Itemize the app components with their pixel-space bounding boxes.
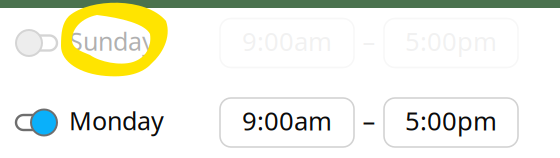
staticText: Sunday: [69, 24, 155, 58]
staticText: 5:00pm: [405, 103, 497, 138]
button[interactable]: 5:00pm: [384, 98, 518, 147]
button[interactable]: Monday: [0, 105, 164, 139]
button[interactable]: Sunday: [0, 26, 155, 60]
button[interactable]: 9:00am: [220, 98, 354, 147]
button[interactable]: 9:00am: [220, 18, 354, 67]
staticText: 9:00am: [242, 24, 332, 58]
staticText: Monday: [69, 103, 164, 137]
staticText: –: [362, 103, 375, 138]
staticText: 5:00pm: [405, 24, 497, 58]
button[interactable]: 5:00pm: [384, 18, 518, 67]
staticText: 9:00am: [242, 103, 332, 138]
